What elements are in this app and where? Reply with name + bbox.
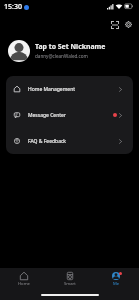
button[interactable]: Smart — [47, 268, 93, 290]
staticText: danny@cleanWaled.com — [35, 53, 88, 59]
staticText: Smart — [64, 281, 76, 287]
button[interactable]: Settings — [120, 16, 137, 33]
staticText: Home Management — [28, 86, 76, 93]
button[interactable]: Me — [93, 268, 139, 290]
button[interactable]: Message Center — [6, 102, 133, 128]
staticText: Home — [18, 281, 30, 287]
button[interactable]: Home — [0, 268, 47, 290]
staticText: 15:30 — [4, 2, 22, 12]
staticText: Tap to Set Nickname — [35, 42, 106, 51]
staticText: Message Center — [28, 112, 66, 119]
button[interactable]: Tap to Set Nickname — [0, 36, 139, 65]
button[interactable]: Scan QR code — [106, 16, 123, 33]
staticText: FAQ & Feedback — [28, 138, 67, 145]
button[interactable]: FAQ & Feedback — [6, 128, 133, 154]
staticText: Me — [113, 281, 120, 287]
button[interactable]: Home Management — [6, 76, 133, 102]
